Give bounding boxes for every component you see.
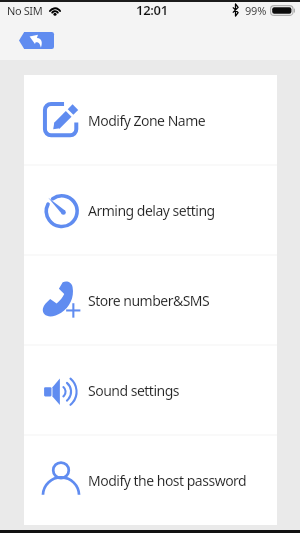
- staticText: No SIM: [7, 3, 43, 18]
- staticText: Arming delay setting: [88, 201, 215, 220]
- button[interactable]: Store number&SMS: [24, 255, 277, 345]
- staticText: Modify the host password: [88, 471, 247, 490]
- button[interactable]: Sound settings: [24, 345, 277, 435]
- button[interactable]: Back: [19, 32, 54, 49]
- button[interactable]: Modify the host password: [24, 435, 277, 525]
- staticText: Modify Zone Name: [88, 111, 206, 130]
- staticText: 12:01: [136, 1, 168, 19]
- staticText: Sound settings: [88, 381, 179, 400]
- staticText: Store number&SMS: [88, 291, 210, 310]
- button[interactable]: Arming delay setting: [24, 165, 277, 255]
- button[interactable]: Modify Zone Name: [24, 75, 277, 165]
- staticText: 99%: [245, 3, 267, 18]
